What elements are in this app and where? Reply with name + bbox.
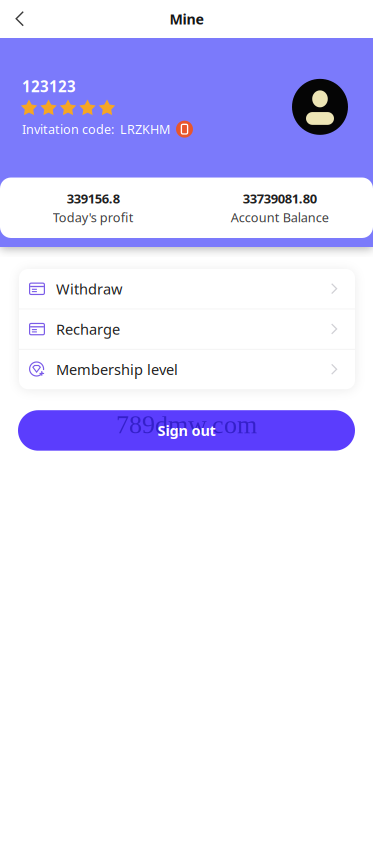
staticText: Recharge [56, 319, 120, 339]
button[interactable]: 789dmw.com [18, 410, 355, 451]
staticText: Mine [169, 9, 203, 29]
button[interactable]: Copy invitation code [170, 121, 193, 138]
staticText: Membership level [56, 359, 178, 379]
staticText: Today's profit [53, 209, 134, 226]
button[interactable]: Withdraw [19, 269, 355, 309]
staticText: Account Balance [231, 209, 329, 226]
staticText: 789dmw.com [116, 410, 257, 439]
staticText: 339156.8 [67, 189, 120, 207]
staticText: 123123 [22, 76, 76, 97]
button[interactable]: Membership level [19, 350, 355, 389]
staticText: Withdraw [56, 279, 122, 299]
button[interactable]: Recharge [19, 309, 355, 349]
staticText: Invitation code: [22, 121, 114, 138]
staticText: LRZKHM [120, 121, 170, 138]
button[interactable]: Back [0, 0, 35, 37]
staticText: 33739081.80 [243, 189, 317, 207]
staticText: Sign out [157, 421, 215, 440]
